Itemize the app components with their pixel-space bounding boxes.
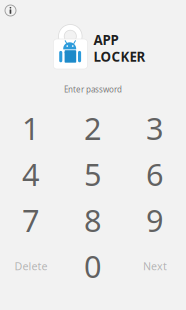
staticText: 1 [22,108,40,148]
staticText: LOCKER [93,48,145,65]
button[interactable]: 4 [0,151,62,197]
button[interactable]: 0 [62,243,124,289]
staticText: 3 [146,108,164,148]
button[interactable]: 2 [62,105,124,151]
button[interactable]: Info [0,0,21,21]
button[interactable]: 6 [124,151,186,197]
staticText: Enter password [64,84,122,95]
staticText: 5 [84,154,102,194]
button[interactable]: 5 [62,151,124,197]
staticText: Delete [14,259,47,273]
staticText: 2 [84,108,102,148]
button[interactable]: 1 [0,105,62,151]
button[interactable]: 9 [124,197,186,243]
button[interactable]: 7 [0,197,62,243]
staticText: APP [93,31,118,49]
button[interactable]: 8 [62,197,124,243]
button[interactable]: 3 [124,105,186,151]
staticText: 8 [84,200,102,240]
staticText: 6 [146,154,164,194]
staticText: 0 [84,246,102,286]
staticText: 7 [22,200,40,240]
staticText: 9 [146,200,164,240]
staticText: 4 [22,154,40,194]
staticText: Next [143,259,167,273]
button[interactable]: Delete [0,243,62,289]
button[interactable]: Next [124,243,186,289]
